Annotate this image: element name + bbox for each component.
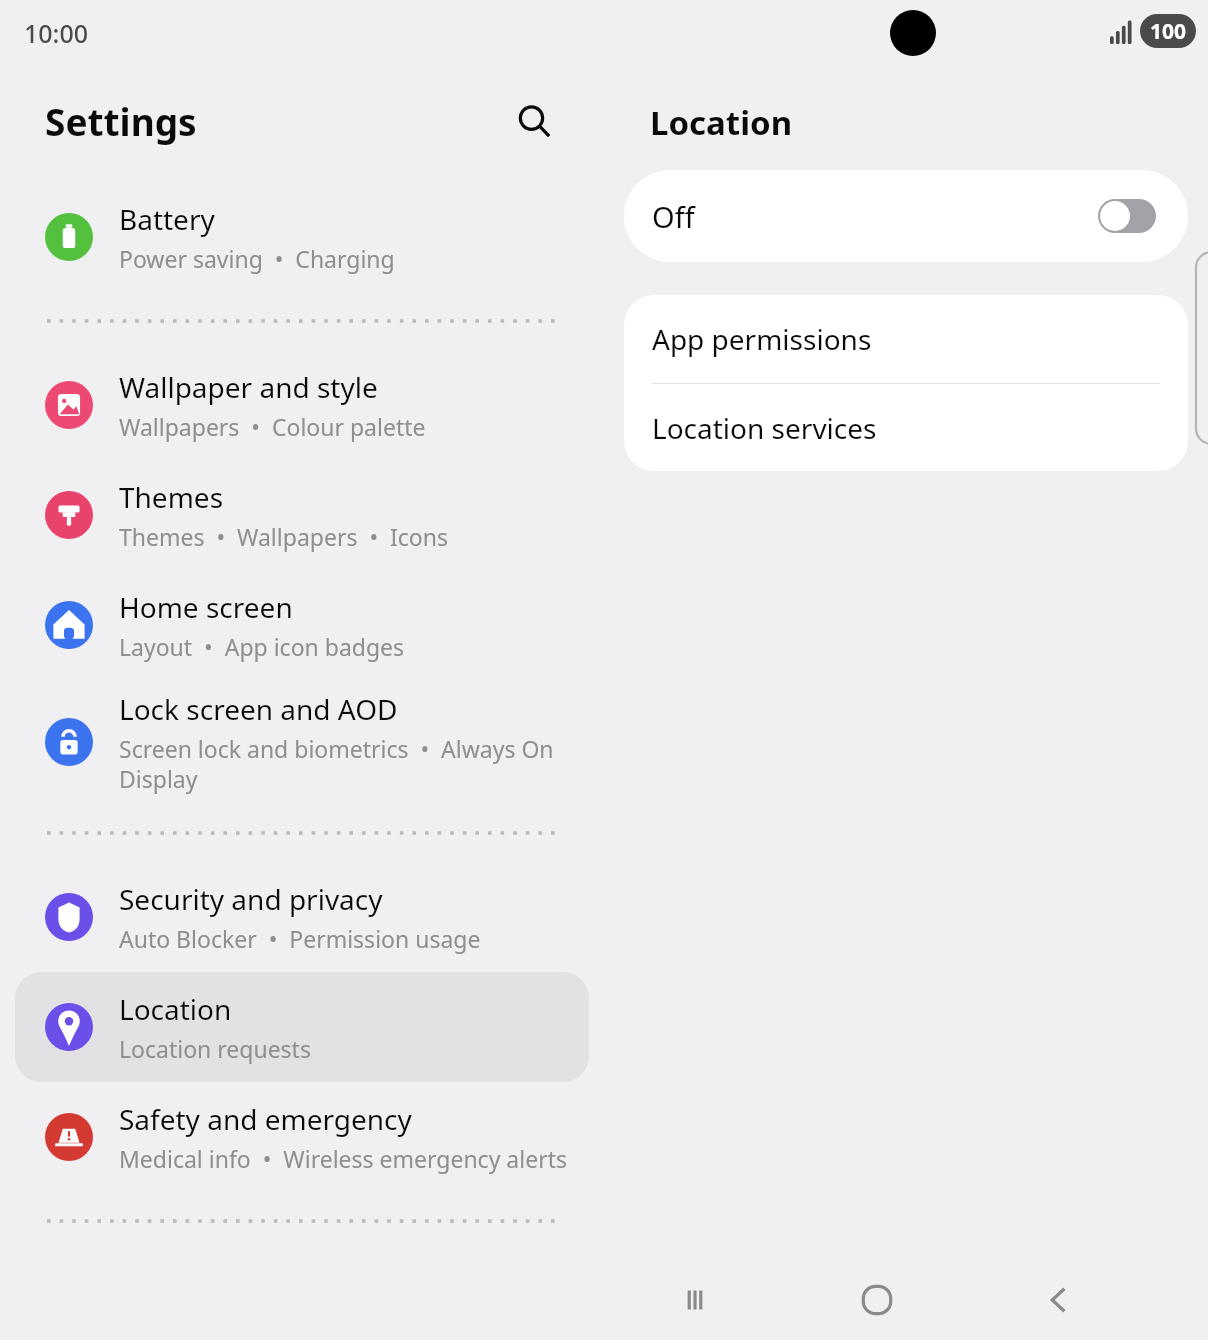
- staticText: Power saving • Charging: [119, 243, 395, 274]
- button[interactable]: Safety and emergency: [15, 1082, 589, 1192]
- other: Location toggle, off: [1098, 199, 1156, 233]
- staticText: App permissions: [652, 320, 872, 358]
- button[interactable]: Location: [15, 972, 589, 1082]
- staticText: Auto Blocker • Permission usage: [119, 923, 481, 954]
- button[interactable]: Themes: [15, 460, 589, 570]
- button[interactable]: Back: [968, 1260, 1150, 1340]
- staticText: Layout • App icon badges: [119, 631, 405, 662]
- staticText: Battery: [119, 200, 215, 238]
- staticText: Home screen: [119, 588, 293, 626]
- button[interactable]: Wallpaper and style: [15, 350, 589, 460]
- staticText: Themes: [119, 478, 224, 516]
- staticText: Medical info • Wireless emergency alerts: [119, 1143, 567, 1174]
- button[interactable]: Lock screen and AOD: [15, 680, 589, 804]
- button[interactable]: Location services: [624, 384, 1188, 471]
- button[interactable]: Recents: [604, 1260, 786, 1340]
- button[interactable]: App permissions: [624, 295, 1188, 383]
- staticText: Settings: [45, 96, 197, 146]
- staticText: Wallpapers • Colour palette: [119, 411, 426, 442]
- staticText: 100: [1150, 17, 1187, 46]
- staticText: Location: [650, 100, 793, 145]
- staticText: Screen lock and biometrics • Always On D…: [119, 733, 554, 794]
- button[interactable]: Home: [786, 1260, 968, 1340]
- staticText: Safety and emergency: [119, 1100, 412, 1138]
- button[interactable]: Battery: [15, 182, 589, 292]
- button[interactable]: Search: [504, 91, 564, 151]
- staticText: Wallpaper and style: [119, 368, 378, 406]
- button[interactable]: Off: [624, 170, 1188, 262]
- staticText: Location services: [652, 409, 877, 447]
- staticText: Security and privacy: [119, 880, 383, 918]
- staticText: Themes • Wallpapers • Icons: [119, 521, 448, 552]
- button[interactable]: Security and privacy: [15, 862, 589, 972]
- staticText: Location: [119, 990, 232, 1028]
- staticText: Location requests: [119, 1033, 311, 1064]
- button[interactable]: Home screen: [15, 570, 589, 680]
- staticText: 10:00: [24, 16, 89, 50]
- staticText: Lock screen and AOD: [119, 690, 398, 728]
- staticText: Off: [652, 197, 695, 236]
